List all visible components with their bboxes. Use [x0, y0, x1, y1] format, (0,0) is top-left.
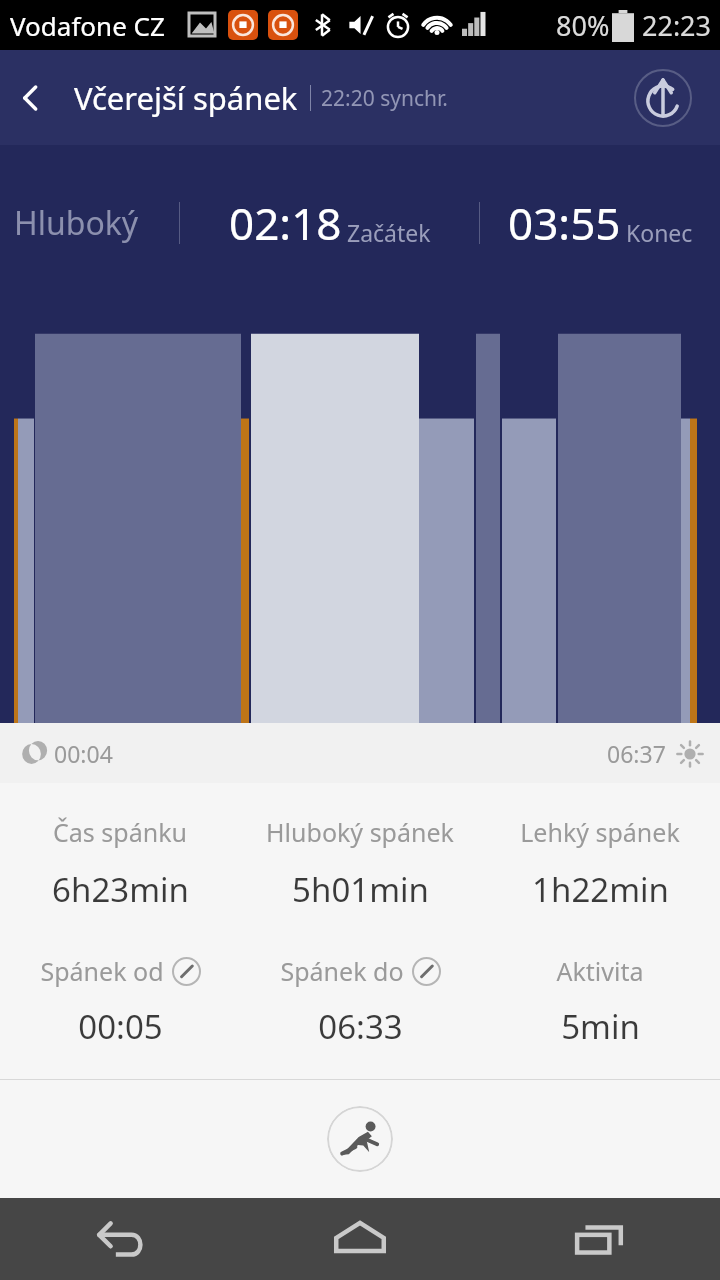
staticText: Aktivita	[556, 954, 644, 988]
staticText: Hluboký	[14, 201, 139, 245]
staticText: 03:55	[508, 193, 621, 253]
staticText: Čas spánku	[53, 815, 187, 849]
staticText: 5min	[561, 1004, 640, 1049]
staticText: 5h01min	[292, 867, 429, 912]
button[interactable]: Spánek od	[0, 954, 240, 1049]
staticText: Spánek od	[40, 954, 164, 988]
button[interactable]: Lehký spánek	[480, 815, 720, 912]
staticText: Hluboký spánek	[266, 815, 454, 849]
staticText: Včerejší spánek	[74, 77, 298, 119]
button[interactable]: Home	[240, 1198, 480, 1280]
staticText: 00:05	[78, 1004, 163, 1049]
staticText: 06:37	[607, 738, 666, 769]
staticText: 06:33	[318, 1004, 403, 1049]
staticText: 22:20 synchr.	[321, 84, 448, 113]
staticText: Vodafone CZ	[10, 8, 165, 43]
button[interactable]: Activity	[327, 1106, 393, 1172]
staticText: Začátek	[347, 217, 431, 248]
staticText: Lehký spánek	[520, 815, 680, 849]
button[interactable]: Recent apps	[480, 1198, 720, 1280]
staticText: 6h23min	[52, 867, 189, 912]
staticText: 1h22min	[532, 867, 669, 912]
button[interactable]: Share	[634, 69, 692, 127]
staticText: 02:18	[229, 193, 342, 253]
button[interactable]: Spánek do	[240, 954, 480, 1049]
button[interactable]: Back	[0, 67, 62, 129]
staticText: 80%	[556, 7, 610, 44]
staticText: Konec	[626, 217, 693, 248]
button[interactable]: Back	[0, 1198, 240, 1280]
staticText: 22:23	[642, 7, 712, 44]
staticText: 00:04	[54, 738, 113, 769]
button[interactable]: Aktivita	[480, 954, 720, 1049]
button[interactable]: Hluboký spánek	[240, 815, 480, 912]
staticText: Spánek do	[280, 954, 404, 988]
button[interactable]: Čas spánku	[0, 815, 240, 912]
